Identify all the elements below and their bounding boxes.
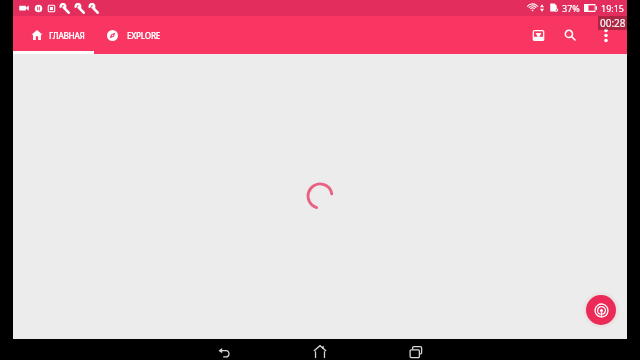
button[interactable]: More options (594, 19, 618, 51)
staticText: ГЛАВНАЯ (49, 30, 85, 41)
staticText: 00:28 (600, 16, 626, 30)
button[interactable]: ГЛАВНАЯ (13, 16, 94, 54)
button[interactable]: EXPLORE (94, 16, 170, 54)
staticText: EXPLORE (127, 30, 161, 41)
button[interactable]: Back (210, 341, 238, 360)
button[interactable]: Home (306, 341, 334, 360)
button[interactable]: Broadcast (586, 295, 616, 325)
button[interactable]: Inbox (522, 19, 554, 51)
staticText: 19:15 (601, 2, 625, 14)
button[interactable]: Recents (402, 341, 430, 360)
staticText: 37% (562, 2, 580, 14)
button[interactable]: Search (554, 19, 586, 51)
